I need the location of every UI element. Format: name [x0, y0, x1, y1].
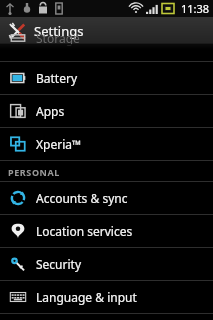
button[interactable]: Settings [0, 17, 213, 44]
button[interactable]: Location services [0, 215, 213, 247]
button[interactable]: Accounts & sync [0, 182, 213, 214]
button[interactable]: Battery [0, 62, 213, 94]
staticText: Security [36, 256, 82, 272]
button[interactable]: Apps [0, 95, 213, 127]
button[interactable]: Security [0, 248, 213, 280]
staticText: Apps [36, 103, 65, 119]
staticText: 11:38 [181, 1, 210, 16]
staticText: Accounts & sync [36, 190, 128, 206]
staticText: Location services [36, 223, 133, 239]
staticText: Xperia™ [36, 136, 82, 152]
staticText: Storage [36, 30, 80, 46]
staticText: Settings [34, 22, 84, 40]
staticText: Language & input [36, 289, 137, 305]
staticText: PERSONAL [8, 166, 60, 178]
button[interactable]: Language & input [0, 281, 213, 313]
button[interactable]: Xperia™ [0, 128, 213, 160]
staticText: Battery [36, 70, 78, 86]
button[interactable]: Storage [0, 44, 213, 61]
